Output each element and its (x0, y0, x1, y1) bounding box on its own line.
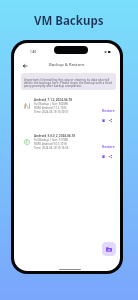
staticText: Backup & Restore (49, 62, 85, 68)
button[interactable]: Share (108, 154, 112, 158)
staticText: VM Backups (34, 13, 104, 29)
staticText: Time: 2024-04-18 10:16:56 (34, 146, 69, 150)
button[interactable]: Android_9.0.0_2_2024-04-18 (14, 135, 120, 151)
staticText: Android_7.1.2_2024-04-18 (34, 98, 72, 102)
button[interactable]: Restore (102, 144, 115, 148)
button[interactable]: Android_7.1.2_2024-04-18 (14, 99, 120, 115)
staticText: Full Backup | Size: 502MB (34, 102, 68, 106)
button[interactable]: New backup (102, 242, 116, 256)
button[interactable]: Back (20, 61, 29, 70)
button[interactable]: Delete (101, 118, 105, 122)
staticText: Full Backup | Size: 517MB (34, 138, 68, 142)
button[interactable]: Delete (101, 154, 105, 158)
staticText: Important: Uninstalling this app or clea… (24, 78, 113, 88)
staticText: Android_9.0.0_2_2024-04-18 (34, 134, 76, 138)
button[interactable]: Restore (102, 108, 115, 112)
staticText: Time: 2024-04-18 13:30:07 (34, 110, 69, 114)
staticText: ROM: Android 7.1.2 1035 (34, 106, 67, 110)
button[interactable]: Share (108, 118, 112, 122)
staticText: ROM: Android 9.0.0 1018 (34, 142, 67, 146)
staticText: 1:40 (30, 50, 37, 54)
